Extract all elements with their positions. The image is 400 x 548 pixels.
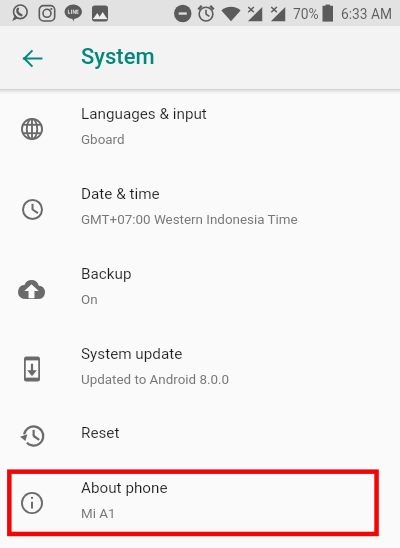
staticText: Gboard <box>81 132 125 148</box>
staticText: 70% <box>293 6 319 22</box>
staticText: Date & time <box>81 185 160 203</box>
staticText: About phone <box>81 479 168 497</box>
staticText: Mi A1 <box>81 506 116 522</box>
staticText: Languages & input <box>81 105 207 123</box>
staticText: On <box>81 292 98 308</box>
button[interactable]: Languages & input <box>0 89 400 169</box>
staticText: Reset <box>81 424 120 442</box>
button[interactable]: Back <box>8 34 56 82</box>
button[interactable]: Backup <box>0 249 400 329</box>
staticText: Backup <box>81 265 132 283</box>
button[interactable]: Date & time <box>0 169 400 249</box>
staticText: GMT+07:00 Western Indonesia Time <box>81 212 298 228</box>
staticText: 6:33 AM <box>341 6 393 22</box>
staticText: System <box>81 44 155 70</box>
staticText: Updated to Android 8.0.0 <box>81 372 230 388</box>
button[interactable]: Reset <box>0 409 400 463</box>
staticText: System update <box>81 345 183 363</box>
button[interactable]: About phone <box>0 463 400 543</box>
button[interactable]: System update <box>0 329 400 409</box>
